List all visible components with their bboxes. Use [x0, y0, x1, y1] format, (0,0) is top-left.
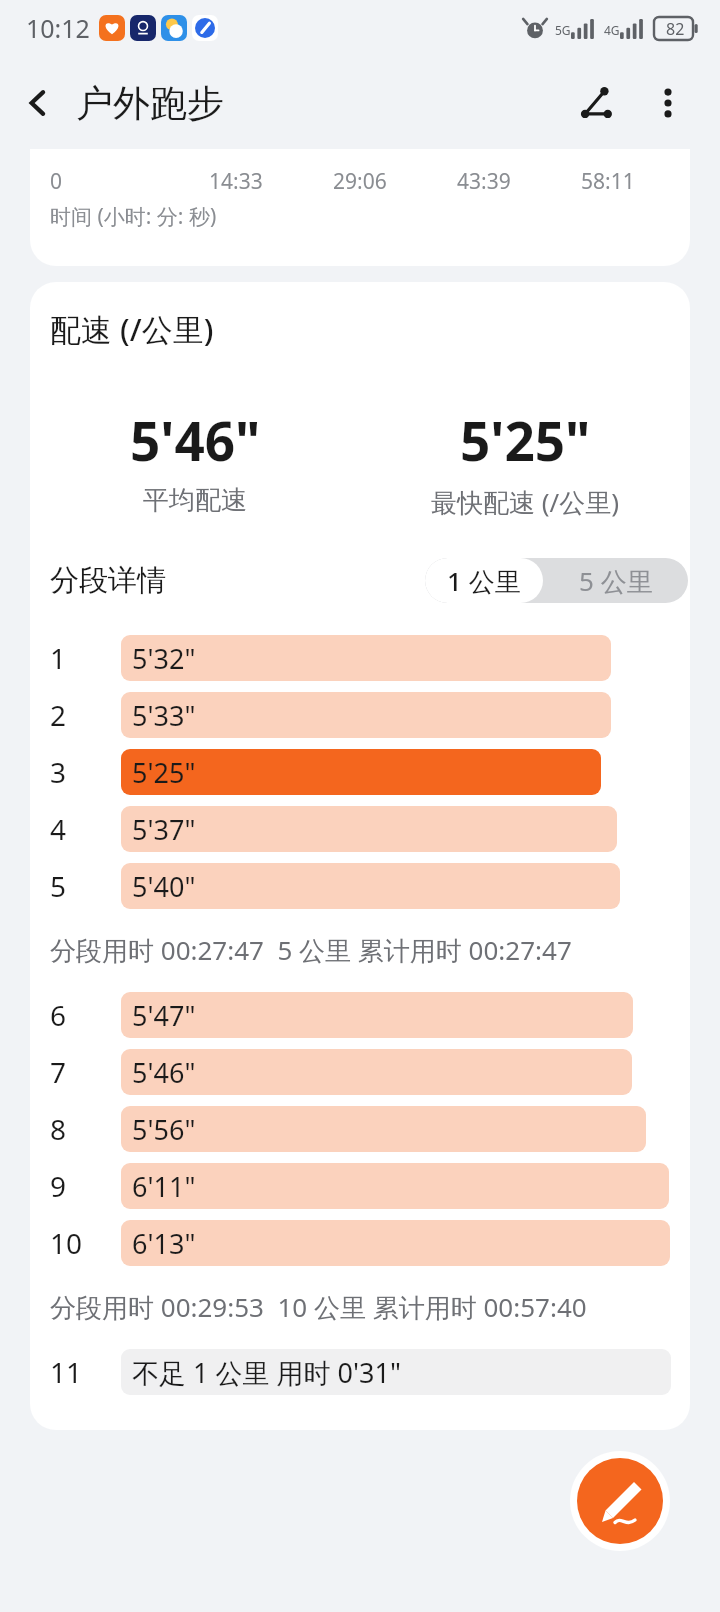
button[interactable]: 3 [30, 743, 690, 800]
staticText: 3 [50, 753, 67, 791]
button[interactable]: 1 [30, 629, 690, 686]
staticText: 分段用时 00:27:47 5 公里 累计用时 00:27:47 [50, 932, 572, 968]
staticText: 最快配速 (/公里) [431, 484, 620, 520]
staticText: 5'47" [132, 997, 196, 1034]
button[interactable]: 2 [30, 686, 690, 743]
staticText: 43:39 [457, 167, 511, 196]
staticText: 14:33 [209, 167, 263, 196]
staticText: 5'46" [132, 1054, 196, 1091]
button[interactable]: 5 [30, 857, 690, 914]
staticText: 2 [50, 696, 67, 734]
button[interactable]: 5 公里 [543, 558, 688, 603]
staticText: 平均配速 [143, 484, 247, 517]
staticText: 不足 1 公里 用时 0'31" [132, 1354, 401, 1391]
button[interactable]: 4 [30, 800, 690, 857]
button[interactable]: 6 [30, 986, 690, 1043]
staticText: 5 公里 [579, 563, 653, 599]
button[interactable]: Back [0, 65, 76, 141]
staticText: 1 [50, 639, 67, 677]
button[interactable]: 8 [30, 1100, 690, 1157]
button[interactable]: Edit [570, 1451, 670, 1551]
button[interactable]: 9 [30, 1157, 690, 1214]
staticText: 5'46" [130, 404, 261, 476]
staticText: 4 [50, 810, 67, 848]
staticText: 分段详情 [50, 562, 166, 599]
button[interactable]: 10 [30, 1214, 690, 1271]
staticText: 0 [50, 167, 63, 196]
staticText: 分段用时 00:29:53 10 公里 累计用时 00:57:40 [50, 1289, 587, 1325]
staticText: 5'56" [132, 1111, 196, 1148]
button[interactable]: 1 公里 [425, 558, 543, 603]
staticText: 6'11" [132, 1168, 196, 1205]
staticText: 10:12 [26, 11, 90, 45]
staticText: 6'13" [132, 1225, 196, 1262]
button[interactable]: More options [632, 67, 704, 139]
staticText: 5'37" [132, 811, 196, 848]
staticText: 5'25" [132, 754, 196, 791]
staticText: 82 [666, 18, 685, 40]
staticText: 58:11 [581, 167, 635, 196]
staticText: 1 公里 [447, 563, 521, 599]
staticText: 5 [50, 867, 67, 905]
staticText: 9 [50, 1167, 67, 1205]
button[interactable]: 7 [30, 1043, 690, 1100]
staticText: 配速 (/公里) [50, 308, 214, 350]
staticText: 4G [604, 22, 620, 38]
staticText: 11 [50, 1353, 83, 1391]
staticText: 户外跑步 [76, 80, 224, 127]
staticText: 5G [555, 22, 571, 38]
staticText: 时间 (小时: 分: 秒) [50, 202, 217, 231]
staticText: 29:06 [333, 167, 387, 196]
staticText: 7 [50, 1053, 67, 1091]
staticText: 6 [50, 996, 67, 1034]
staticText: 8 [50, 1110, 67, 1148]
button[interactable]: 11 [30, 1343, 690, 1400]
staticText: 5'33" [132, 697, 196, 734]
staticText: 5'40" [132, 868, 196, 905]
staticText: 10 [50, 1224, 83, 1262]
staticText: 5'32" [132, 640, 196, 677]
staticText: 5'25" [460, 404, 591, 476]
button[interactable]: Share [560, 67, 632, 139]
